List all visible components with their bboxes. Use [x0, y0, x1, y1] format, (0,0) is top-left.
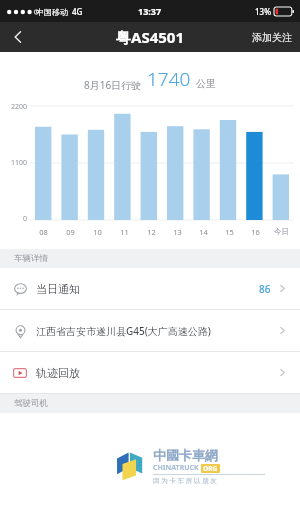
staticText: 公里	[196, 77, 216, 90]
staticText: 粤AS4501	[116, 27, 184, 47]
staticText: 轨迹回放	[36, 366, 272, 380]
button[interactable]: Back	[0, 22, 36, 52]
staticText: 车辆详情	[14, 253, 48, 264]
staticText: 15	[225, 227, 234, 237]
staticText: 16	[251, 227, 260, 237]
staticText: 13:37	[138, 5, 162, 17]
staticText: 8月16日行驶	[84, 78, 142, 92]
button[interactable]: 轨迹回放	[0, 352, 300, 393]
staticText: 驾驶司机	[14, 398, 48, 409]
staticText: 13	[173, 227, 182, 237]
button[interactable]: 添加关注	[252, 31, 292, 44]
staticText: 1740	[147, 66, 191, 92]
staticText: 因 为 卡 车 所 以 朋 友	[153, 476, 217, 485]
staticText: 今日	[274, 227, 289, 236]
staticText: 中国移动	[36, 7, 68, 17]
staticText: 当日通知	[36, 282, 259, 296]
staticText: 1100	[10, 158, 27, 168]
button[interactable]: 江西省吉安市遂川县G45(大广高速公路)	[0, 310, 300, 351]
staticText: 江西省吉安市遂川县G45(大广高速公路)	[36, 324, 272, 338]
staticText: 86	[259, 282, 271, 296]
staticText: 0	[22, 214, 27, 224]
staticText: 12	[147, 227, 156, 237]
staticText: 13%	[255, 6, 271, 17]
staticText: 4G	[72, 6, 83, 17]
staticText: 14	[199, 227, 208, 237]
staticText: 2200	[10, 102, 27, 112]
staticText: 添加关注	[252, 31, 292, 44]
staticText: 中國卡車網	[153, 447, 218, 463]
staticText: 09	[66, 227, 75, 237]
staticText: 08	[39, 227, 48, 237]
staticText: 10	[93, 227, 102, 237]
button[interactable]: 当日通知	[0, 268, 300, 309]
staticText: 11	[120, 227, 129, 237]
staticText: ORG	[203, 464, 218, 473]
staticText: CHINATRUCK	[153, 463, 199, 473]
